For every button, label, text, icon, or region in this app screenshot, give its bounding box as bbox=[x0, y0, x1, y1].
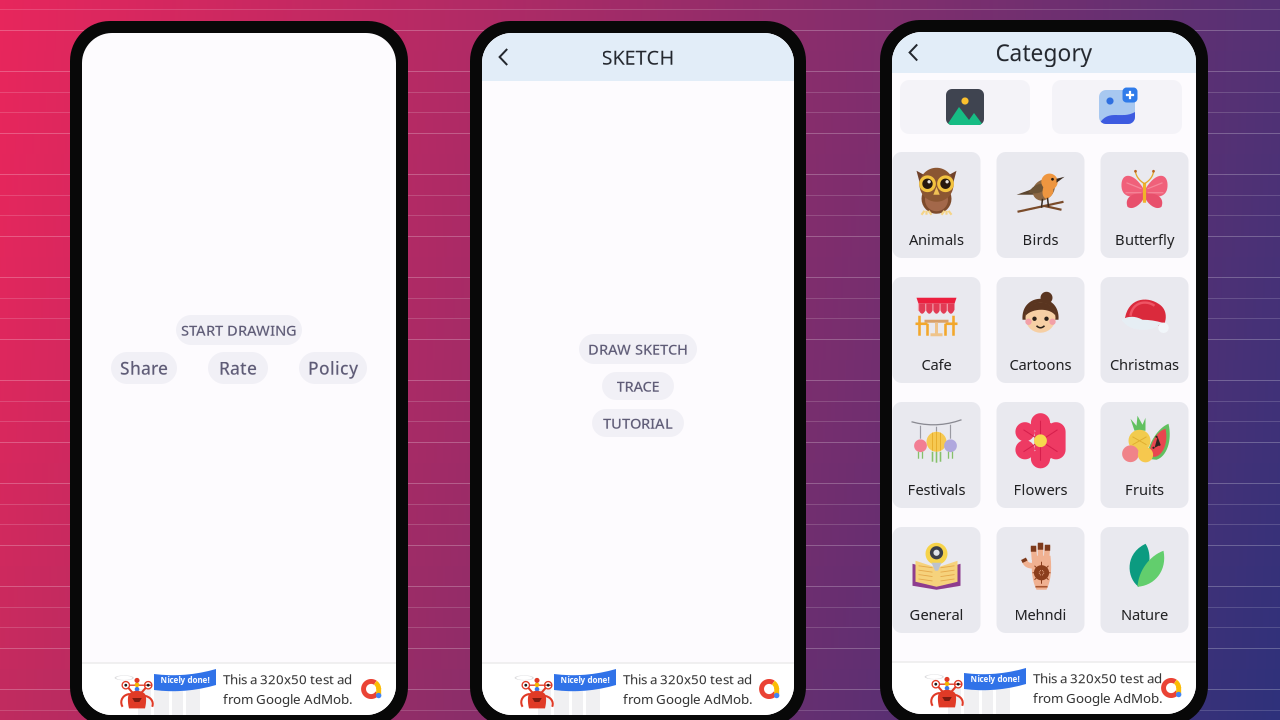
button[interactable]: Mehndi bbox=[996, 527, 1084, 633]
button[interactable]: Gallery bbox=[900, 80, 1030, 134]
button[interactable]: Christmas bbox=[1100, 277, 1188, 383]
staticText: Animals bbox=[909, 229, 964, 249]
staticText: Rate bbox=[219, 356, 257, 379]
button[interactable]: Cartoons bbox=[996, 277, 1084, 383]
staticText: Nicely done! bbox=[160, 675, 209, 685]
button[interactable]: Add image bbox=[1052, 80, 1182, 134]
staticText: from Google AdMob. bbox=[623, 690, 753, 708]
staticText: Festivals bbox=[907, 479, 965, 499]
staticText: Fruits bbox=[1125, 479, 1164, 499]
staticText: Birds bbox=[1022, 229, 1058, 249]
staticText: Cafe bbox=[921, 354, 951, 374]
staticText: This a 320x50 test ad bbox=[623, 670, 752, 688]
button[interactable]: Cafe bbox=[892, 277, 980, 383]
button[interactable]: TRACE bbox=[602, 372, 674, 400]
staticText: This a 320x50 test ad bbox=[223, 670, 352, 688]
button[interactable]: START DRAWING bbox=[176, 315, 302, 345]
button[interactable]: Nature bbox=[1100, 527, 1188, 633]
staticText: TUTORIAL bbox=[603, 413, 673, 433]
staticText: Policy bbox=[308, 356, 358, 379]
button[interactable]: TUTORIAL bbox=[592, 409, 684, 437]
button[interactable]: Animals bbox=[892, 152, 980, 258]
staticText: Category bbox=[995, 37, 1092, 67]
button[interactable]: Policy bbox=[299, 352, 367, 384]
staticText: Nicely done! bbox=[560, 675, 609, 685]
button[interactable]: Rate bbox=[208, 352, 268, 384]
button[interactable]: Share bbox=[111, 352, 177, 384]
button[interactable]: Back bbox=[482, 33, 526, 81]
staticText: from Google AdMob. bbox=[223, 690, 353, 708]
staticText: Nicely done! bbox=[970, 674, 1019, 684]
staticText: Mehndi bbox=[1014, 604, 1066, 624]
button[interactable]: Fruits bbox=[1100, 402, 1188, 508]
button[interactable]: DRAW SKETCH bbox=[579, 334, 697, 364]
staticText: Flowers bbox=[1013, 479, 1067, 499]
button[interactable]: General bbox=[892, 527, 980, 633]
staticText: START DRAWING bbox=[181, 320, 297, 340]
staticText: Christmas bbox=[1110, 354, 1179, 374]
staticText: TRACE bbox=[616, 376, 659, 396]
button[interactable]: Festivals bbox=[892, 402, 980, 508]
staticText: Nature bbox=[1121, 604, 1168, 624]
staticText: Butterfly bbox=[1115, 229, 1174, 249]
staticText: SKETCH bbox=[601, 44, 674, 70]
staticText: from Google AdMob. bbox=[1033, 689, 1163, 707]
staticText: Share bbox=[120, 356, 168, 379]
button[interactable]: Butterfly bbox=[1100, 152, 1188, 258]
staticText: This a 320x50 test ad bbox=[1033, 669, 1162, 687]
staticText: Cartoons bbox=[1009, 354, 1071, 374]
staticText: General bbox=[909, 604, 963, 624]
button[interactable]: Flowers bbox=[996, 402, 1084, 508]
staticText: DRAW SKETCH bbox=[588, 339, 688, 359]
button[interactable]: Back bbox=[892, 32, 936, 73]
button[interactable]: Birds bbox=[996, 152, 1084, 258]
